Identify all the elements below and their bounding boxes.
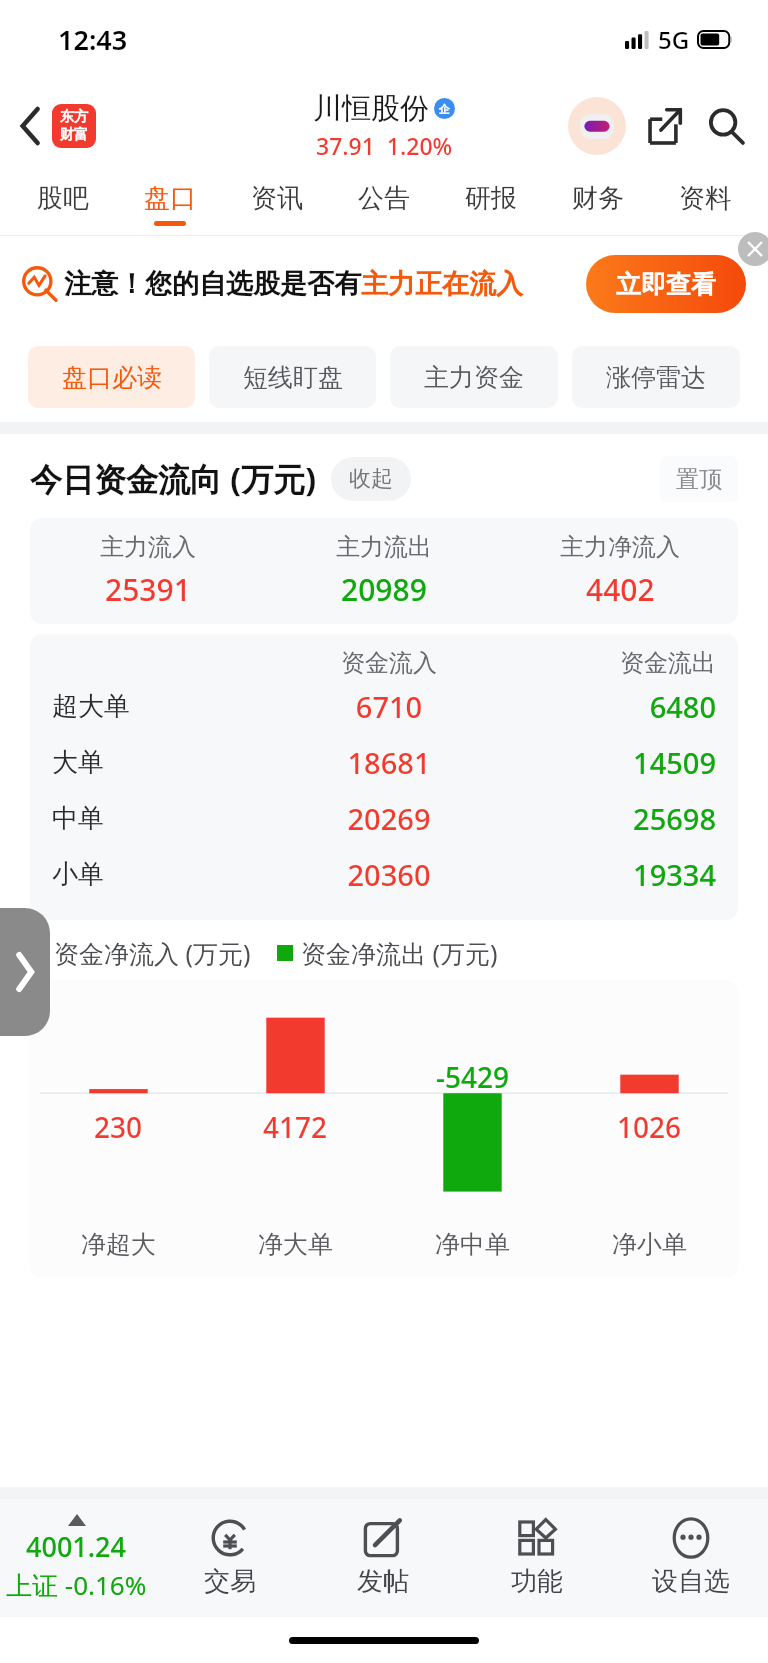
staticText: 净中单 <box>435 1229 510 1260</box>
staticText: 主力正在流入 <box>361 267 523 301</box>
button[interactable]: Share <box>640 101 690 151</box>
button[interactable]: 功能 <box>460 1518 614 1598</box>
staticText: 立即查看 <box>616 269 716 300</box>
staticText: 4402 <box>586 569 655 610</box>
staticText: 净超大 <box>81 1229 156 1260</box>
button[interactable]: 短线盯盘 <box>209 346 376 408</box>
staticText: 14509 <box>498 743 716 782</box>
staticText: 资金流入 <box>280 648 498 678</box>
staticText: 37.91 1.20% <box>316 130 453 161</box>
staticText: 股吧 <box>37 182 89 215</box>
staticText: 25391 <box>105 569 191 610</box>
staticText: 财富 <box>60 126 88 144</box>
staticText: 净小单 <box>612 1229 687 1260</box>
staticText: 4172 <box>263 1108 328 1146</box>
staticText: 净大单 <box>258 1229 333 1260</box>
button[interactable]: 立即查看 <box>586 255 746 313</box>
staticText: 超大单 <box>52 690 280 723</box>
button[interactable]: 设自选 <box>614 1518 768 1598</box>
button[interactable]: 资料 <box>651 173 758 235</box>
button[interactable]: 小单 <box>30 846 738 902</box>
staticText: 企 <box>439 102 450 116</box>
button[interactable]: 4001.24 <box>0 1514 153 1603</box>
button[interactable]: Back <box>14 98 102 154</box>
staticText: 研报 <box>465 182 517 215</box>
staticText: 设自选 <box>652 1565 730 1598</box>
staticText: 置顶 <box>676 465 722 494</box>
staticText: 盘口必读 <box>62 362 162 393</box>
button[interactable]: 发帖 <box>306 1518 460 1598</box>
button[interactable]: 超大单 <box>30 678 738 734</box>
staticText: 中单 <box>52 802 280 835</box>
staticText: 主力净流入 <box>560 532 680 562</box>
staticText: 资金净流入 (万元) <box>54 936 251 970</box>
staticText: 5G <box>658 23 690 56</box>
staticText: 230 <box>94 1108 143 1146</box>
staticText: 公告 <box>358 182 410 215</box>
staticText: 19334 <box>498 855 716 894</box>
button[interactable]: 大单 <box>30 734 738 790</box>
button[interactable]: 盘口 <box>116 173 223 235</box>
staticText: 资料 <box>679 182 731 215</box>
staticText: 6480 <box>498 687 716 726</box>
button[interactable]: 置顶 <box>660 456 738 502</box>
button[interactable]: 涨停雷达 <box>572 346 740 408</box>
staticText: 资金净流出 (万元) <box>301 936 498 970</box>
button[interactable]: Search <box>700 100 752 152</box>
button[interactable]: 资讯 <box>223 173 330 235</box>
button[interactable]: 收起 <box>331 457 411 501</box>
button[interactable]: 主力资金 <box>390 346 558 408</box>
button[interactable]: 财务 <box>544 173 651 235</box>
staticText: 短线盯盘 <box>243 362 343 393</box>
button[interactable]: 股吧 <box>10 173 116 235</box>
button[interactable]: Close <box>738 232 768 266</box>
staticText: 交易 <box>204 1565 256 1598</box>
button[interactable]: 公告 <box>330 173 437 235</box>
button[interactable]: 交易 <box>153 1518 306 1598</box>
staticText: 盘口 <box>144 182 196 215</box>
button[interactable]: 主力流入 <box>30 518 738 624</box>
staticText: 20989 <box>341 569 427 610</box>
staticText: 涨停雷达 <box>606 362 706 393</box>
staticText: 资金流出 <box>498 648 716 678</box>
staticText: -5429 <box>436 1058 510 1096</box>
staticText: 川恒股份 <box>313 90 429 127</box>
staticText: 上证 -0.16% <box>6 1567 147 1603</box>
staticText: 今日资金流向 (万元) <box>30 457 317 501</box>
staticText: 1026 <box>617 1108 682 1146</box>
staticText: 东方 <box>60 108 88 126</box>
staticText: 小单 <box>52 858 280 891</box>
staticText: 收起 <box>349 465 393 493</box>
staticText: 注意！您的自选股是否有 <box>64 267 361 301</box>
staticText: 资讯 <box>251 182 303 215</box>
staticText: 发帖 <box>357 1565 409 1598</box>
staticText: 功能 <box>511 1565 563 1598</box>
staticText: 主力流出 <box>336 532 432 562</box>
button[interactable]: 中单 <box>30 790 738 846</box>
staticText: 20269 <box>280 799 498 838</box>
button[interactable]: Assistant <box>568 97 626 155</box>
button[interactable]: 230 <box>30 980 738 1278</box>
button[interactable]: 注意！您的自选股是否有 <box>22 236 746 332</box>
button[interactable]: Expand panel <box>0 908 50 1036</box>
staticText: 12:43 <box>58 21 128 58</box>
staticText: 大单 <box>52 746 280 779</box>
button[interactable]: 盘口必读 <box>28 346 195 408</box>
staticText: 主力流入 <box>100 532 196 562</box>
staticText: 18681 <box>280 743 498 782</box>
staticText: 25698 <box>498 799 716 838</box>
staticText: 财务 <box>572 182 624 215</box>
staticText: 20360 <box>280 855 498 894</box>
staticText: 4001.24 <box>26 1528 127 1565</box>
staticText: 6710 <box>280 687 498 726</box>
button[interactable]: 研报 <box>437 173 544 235</box>
staticText: 主力资金 <box>424 362 524 393</box>
